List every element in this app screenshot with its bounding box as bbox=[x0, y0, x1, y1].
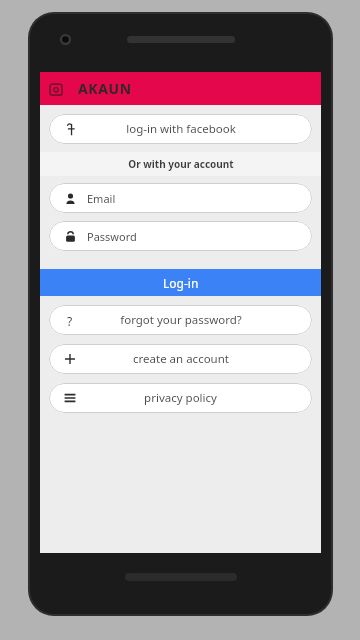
other: App logo bbox=[48, 80, 66, 98]
staticText: log-in with facebook bbox=[126, 121, 236, 137]
staticText: Email bbox=[87, 191, 116, 206]
button[interactable]: create an account bbox=[49, 344, 312, 374]
staticText: privacy policy bbox=[144, 390, 217, 406]
button[interactable]: Log-in bbox=[40, 269, 321, 296]
button[interactable]: ? bbox=[49, 305, 312, 335]
staticText: AKAUN bbox=[78, 79, 132, 98]
staticText: Log-in bbox=[163, 275, 199, 291]
button[interactable]: privacy policy bbox=[49, 383, 312, 413]
button[interactable]: Email bbox=[49, 183, 312, 213]
staticText: forgot your password? bbox=[120, 312, 242, 328]
button[interactable]: log-in with facebook bbox=[49, 114, 312, 144]
staticText: Or with your account bbox=[128, 157, 234, 171]
staticText: ? bbox=[67, 313, 73, 327]
button[interactable]: Password bbox=[49, 221, 312, 251]
staticText: Password bbox=[87, 229, 137, 244]
staticText: create an account bbox=[133, 351, 229, 367]
